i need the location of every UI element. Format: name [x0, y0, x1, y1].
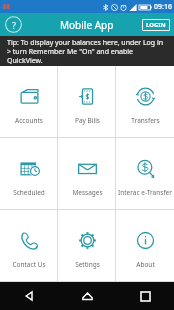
- staticText: Transfers: [131, 116, 160, 125]
- button[interactable]: Tip: To display your balances here, unde…: [0, 36, 174, 66]
- staticText: 09:16: [154, 2, 172, 12]
- button[interactable]: Contact Us: [0, 210, 58, 281]
- button[interactable]: Scheduled: [0, 138, 58, 209]
- button[interactable]: Settings: [58, 210, 116, 281]
- button[interactable]: About: [116, 210, 174, 281]
- staticText: LOGIN: [146, 21, 166, 29]
- button[interactable]: LOGIN: [142, 19, 170, 31]
- staticText: Settings: [75, 260, 100, 269]
- staticText: Interac e-Transfer: [118, 188, 172, 197]
- staticText: Scheduled: [13, 188, 45, 197]
- button[interactable]: Recent apps: [116, 282, 174, 310]
- staticText: ?: [12, 19, 16, 31]
- staticText: About: [136, 260, 155, 269]
- button[interactable]: Home: [58, 282, 116, 310]
- button[interactable]: Pay Bills: [58, 66, 116, 137]
- button[interactable]: Transfers: [116, 66, 174, 137]
- button[interactable]: Back: [0, 282, 58, 310]
- staticText: Tip: To display your balances here, unde…: [7, 38, 167, 65]
- button[interactable]: Accounts: [0, 66, 58, 137]
- button[interactable]: Interac e-Transfer: [116, 138, 174, 209]
- staticText: Accounts: [15, 116, 43, 125]
- button[interactable]: Messages: [58, 138, 116, 209]
- button[interactable]: Help: [5, 16, 22, 33]
- staticText: Mobile App: [60, 18, 114, 32]
- staticText: Pay Bills: [75, 116, 100, 125]
- staticText: Messages: [72, 188, 103, 197]
- staticText: Contact Us: [12, 260, 46, 269]
